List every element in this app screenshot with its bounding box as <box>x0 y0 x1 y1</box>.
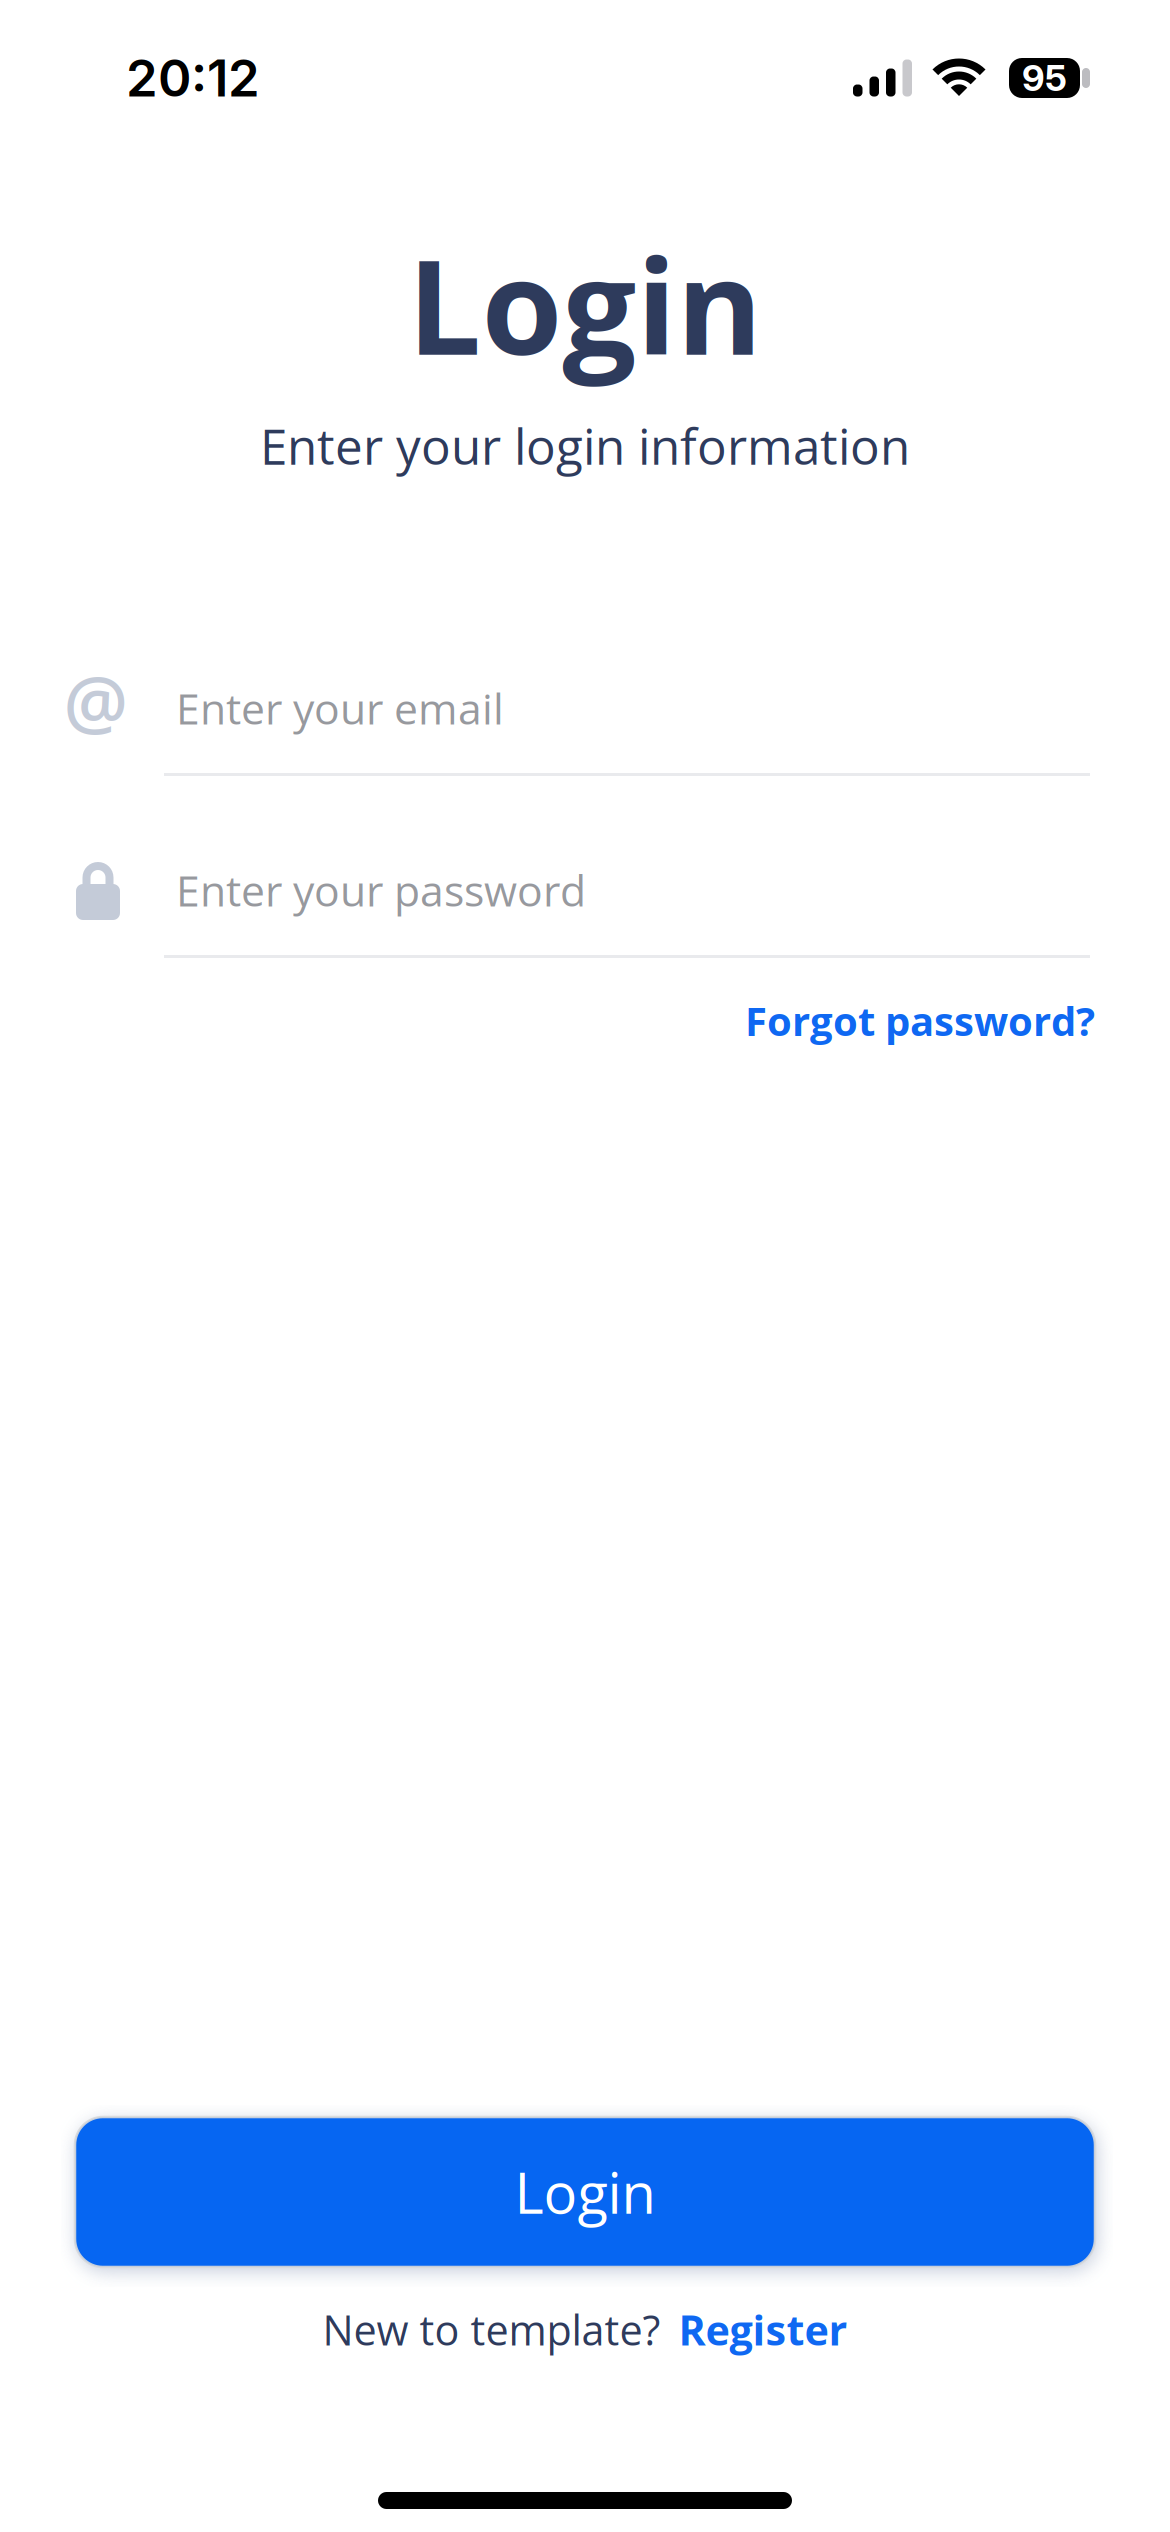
staticText: 20:12 <box>126 47 260 109</box>
staticText: @ <box>63 652 128 750</box>
staticText: Enter your login information <box>260 412 910 479</box>
staticText: Forgot password? <box>745 993 1095 1048</box>
staticText: Enter your email <box>176 679 504 737</box>
staticText: Login <box>407 215 762 393</box>
staticText: Login <box>514 2154 655 2230</box>
staticText: 95 <box>1022 56 1067 100</box>
button[interactable]: Forgot password? <box>745 993 1095 1048</box>
button[interactable]: Enter your password <box>0 861 1170 919</box>
staticText: Register <box>678 2301 847 2358</box>
button[interactable]: Login <box>75 2117 1095 2267</box>
staticText: Enter your password <box>176 861 586 919</box>
button[interactable]: @ <box>0 659 1170 757</box>
button[interactable]: Register <box>678 2301 847 2358</box>
staticText: New to template? <box>322 2301 660 2358</box>
